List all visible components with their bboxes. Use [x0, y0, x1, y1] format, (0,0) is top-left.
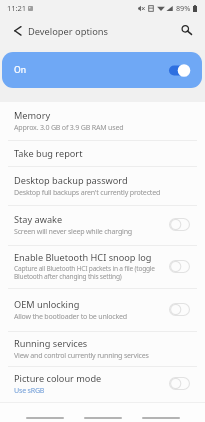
staticText: 11:21	[7, 3, 26, 13]
staticText: Desktop full backups aren't currently pr…	[14, 187, 161, 197]
button[interactable]: Home	[84, 403, 122, 422]
staticText: Allow the bootloader to be unlocked	[14, 311, 127, 321]
staticText: Running services	[14, 337, 88, 350]
button[interactable]: Memory	[0, 102, 205, 140]
staticText: OEM unlocking	[14, 298, 80, 311]
staticText: Stay awake	[14, 213, 63, 226]
button[interactable]: Search	[177, 16, 205, 44]
button[interactable]: OEM unlocking	[0, 289, 205, 331]
staticText: Screen will never sleep while charging	[14, 226, 132, 236]
staticText: Desktop backup password	[14, 174, 128, 187]
button[interactable]: Take bug report	[0, 141, 205, 166]
staticText: On	[14, 64, 27, 76]
button[interactable]: Stay awake	[0, 206, 205, 245]
button[interactable]: Back	[4, 16, 32, 44]
staticText: View and control currently running servi…	[14, 350, 149, 360]
button[interactable]: Enable Bluetooth HCI snoop log	[0, 246, 205, 288]
button[interactable]: Running services	[0, 332, 205, 366]
staticText: Approx. 3.0 GB of 3.9 GB RAM used	[14, 122, 124, 132]
button[interactable]: On	[2, 52, 202, 88]
button[interactable]: Picture colour mode	[0, 367, 205, 402]
staticText: Picture colour mode	[14, 372, 102, 385]
button[interactable]: Desktop backup password	[0, 167, 205, 205]
staticText: Memory	[14, 109, 51, 122]
staticText: 89%	[176, 3, 191, 13]
staticText: Developer options	[28, 25, 108, 38]
staticText: Use sRGB	[14, 385, 45, 395]
staticText: Enable Bluetooth HCI snoop log	[14, 251, 152, 264]
button[interactable]: Back	[142, 403, 180, 422]
staticText: Take bug report	[14, 147, 83, 160]
button[interactable]: Recents	[26, 403, 64, 422]
staticText: Capture all Bluetooth HCI packets in a f…	[14, 264, 155, 281]
